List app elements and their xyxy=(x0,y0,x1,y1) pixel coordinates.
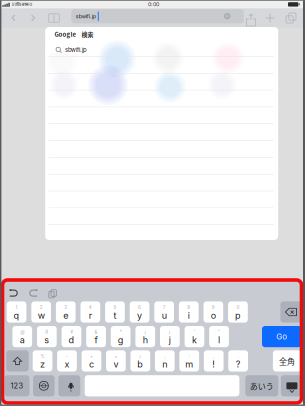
button[interactable]: ' xyxy=(185,326,204,347)
staticText: l xyxy=(218,334,220,345)
button[interactable]: ) xyxy=(160,326,180,347)
button[interactable]: 8 xyxy=(179,301,199,323)
staticText: u xyxy=(162,310,167,321)
button[interactable]: 5 xyxy=(105,301,125,323)
button[interactable]: ; xyxy=(155,350,175,371)
staticText: / xyxy=(139,354,141,359)
button[interactable]: 全角 xyxy=(273,350,301,371)
button[interactable]: , xyxy=(204,350,224,371)
staticText: ¥ xyxy=(70,329,72,335)
button[interactable]: 123 xyxy=(5,375,29,396)
button[interactable]: - xyxy=(57,350,77,371)
staticText: 3 xyxy=(64,305,67,310)
button[interactable]: 1 xyxy=(7,301,26,323)
staticText: Go xyxy=(276,332,287,341)
staticText: y xyxy=(137,310,142,321)
button[interactable]: Next Keyboard xyxy=(33,375,55,396)
button[interactable]: sbwifi.jp xyxy=(46,44,268,55)
staticText: t xyxy=(113,310,116,321)
staticText: ; xyxy=(164,354,165,359)
staticText: ' xyxy=(194,329,195,335)
button[interactable]: ( xyxy=(135,326,155,347)
button[interactable]: Go xyxy=(262,326,301,347)
staticText: 4G xyxy=(26,2,32,7)
button[interactable]: + xyxy=(82,350,101,371)
staticText: ( xyxy=(144,329,146,335)
staticText: p xyxy=(235,310,241,321)
button[interactable]: Paste xyxy=(44,287,59,299)
staticText: g xyxy=(118,334,124,345)
staticText: = xyxy=(114,354,117,359)
button[interactable]: = xyxy=(106,350,126,371)
staticText: ) xyxy=(169,329,171,335)
button[interactable]: Share xyxy=(242,10,256,26)
button[interactable]: 4 xyxy=(80,301,100,323)
staticText: q xyxy=(14,310,20,321)
staticText: d xyxy=(68,334,74,345)
staticText: 6 xyxy=(138,305,141,310)
staticText: 0 xyxy=(236,305,239,310)
staticText: a xyxy=(20,334,25,345)
button[interactable]: 6 xyxy=(130,301,149,323)
staticText: f xyxy=(95,334,98,345)
button[interactable]: あいう xyxy=(245,375,278,396)
button[interactable]: Dictation xyxy=(58,375,80,396)
staticText: o xyxy=(211,310,216,321)
button[interactable]: Bookmarks xyxy=(47,10,61,26)
staticText: sbwifi.jp xyxy=(65,46,87,53)
staticText: sbwifi.jp xyxy=(76,13,96,20)
staticText: SoftBank xyxy=(12,2,28,7)
button[interactable]: % xyxy=(33,350,52,371)
staticText: ! xyxy=(212,359,215,370)
staticText: ? xyxy=(236,359,241,370)
staticText: z xyxy=(40,359,45,370)
button[interactable]: : xyxy=(179,350,199,371)
button[interactable]: sbwifi.jp xyxy=(71,9,244,23)
staticText: 0:00 xyxy=(148,1,159,7)
staticText: 7 xyxy=(163,305,166,310)
staticText: & xyxy=(95,329,98,335)
button[interactable]: # xyxy=(37,326,57,347)
button[interactable]: 0 xyxy=(228,301,248,323)
staticText: 8 xyxy=(187,305,190,310)
staticText: - xyxy=(66,354,68,359)
button[interactable]: Hide Keyboard xyxy=(281,375,302,396)
button[interactable]: ¥ xyxy=(62,326,81,347)
staticText: . xyxy=(238,354,239,359)
button[interactable]: " xyxy=(209,326,229,347)
staticText: x xyxy=(64,359,69,370)
staticText: w xyxy=(38,310,45,321)
staticText: r xyxy=(89,310,92,321)
button[interactable]: * xyxy=(111,326,130,347)
staticText: あいう xyxy=(250,380,274,392)
button[interactable]: Redo xyxy=(26,287,41,299)
staticText: + xyxy=(90,354,93,359)
button[interactable]: Delete xyxy=(280,301,301,323)
button[interactable]: @ xyxy=(12,326,32,347)
button[interactable]: New Tab xyxy=(263,10,277,26)
button[interactable]: 2 xyxy=(31,301,51,323)
button[interactable]: 3 xyxy=(56,301,76,323)
staticText: v xyxy=(113,359,118,370)
staticText: e xyxy=(63,310,68,321)
staticText: i xyxy=(188,310,190,321)
staticText: 2 xyxy=(40,305,43,310)
button[interactable]: Forward xyxy=(26,10,40,26)
button[interactable]: . xyxy=(228,350,248,371)
button[interactable]: & xyxy=(86,326,106,347)
staticText: " xyxy=(218,329,220,335)
staticText: s xyxy=(44,334,49,345)
button[interactable]: 7 xyxy=(154,301,174,323)
button[interactable]: Undo xyxy=(6,287,21,299)
button[interactable]: / xyxy=(130,350,150,371)
staticText: n xyxy=(162,359,167,370)
button[interactable]: 9 xyxy=(203,301,223,323)
staticText: j xyxy=(169,334,171,345)
staticText: 5 xyxy=(113,305,116,310)
staticText: c xyxy=(89,359,94,370)
button[interactable]: Back xyxy=(6,10,20,26)
button[interactable]: Tabs xyxy=(284,10,298,26)
staticText: m xyxy=(185,359,193,370)
button[interactable]: Shift xyxy=(6,350,29,371)
